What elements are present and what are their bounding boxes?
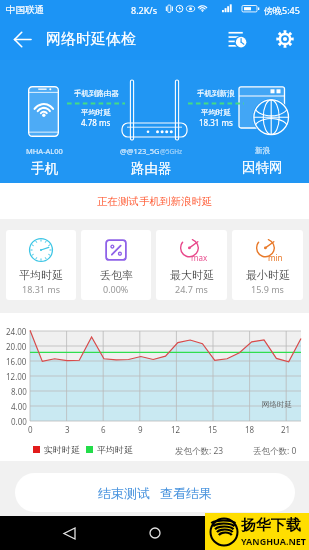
staticText: 手机 [31,160,58,177]
staticText: 16.00 [6,356,27,367]
button[interactable]: 平均时延 [6,230,76,300]
staticText: 最小时延 [246,268,290,282]
staticText: 12 [171,424,181,435]
staticText: @@123_5G [120,146,160,156]
staticText: 中国联通 [6,4,44,16]
staticText: YANGHUA.NET [241,535,307,547]
staticText: 扬华下载 [241,516,301,535]
staticText: 最大时延 [170,268,214,282]
staticText: 丢包率 [100,268,133,282]
staticText: 实时时延 [44,444,80,455]
staticText: 0.00 [11,416,27,427]
button[interactable]: Settings [264,18,306,60]
staticText: 8.2K/s [131,4,157,16]
button[interactable]: Back [52,516,86,550]
staticText: 正在测试手机到新浪时延 [97,195,213,208]
button[interactable]: min [232,230,303,300]
button[interactable]: Back [0,18,44,60]
staticText: 结束测试 [98,485,150,501]
button[interactable]: Home [138,516,172,550]
staticText: 24.7 ms [175,283,208,295]
staticText: 傍晚5:45 [264,4,300,16]
button[interactable]: 结束测试 [94,476,154,510]
staticText: 9 [138,424,143,435]
staticText: 新浪 [255,146,270,155]
staticText: 3 [65,424,70,435]
staticText: 平均时延 [81,108,111,117]
staticText: 4.78 ms [81,117,111,128]
staticText: 4.00 [11,401,27,412]
staticText: 手机到新浪 [197,89,235,98]
staticText: 6 [101,424,106,435]
staticText: 15.9 ms [251,283,284,295]
staticText: 平均时延 [19,268,63,282]
staticText: 因特网 [242,159,283,176]
staticText: 18.31 ms [199,117,233,128]
staticText: 平均时延 [97,444,133,455]
button[interactable]: 查看结果 [156,476,216,510]
staticText: 0 [28,424,33,435]
staticText: @5GHz [160,147,183,156]
staticText: 18 [245,424,255,435]
staticText: 网络时延 [262,400,292,409]
staticText: 24.00 [6,326,27,337]
staticText: 发包个数: 23 [175,445,224,457]
staticText: 15 [208,424,218,435]
staticText: 丢包个数: 0 [253,445,297,457]
staticText: 18.31 ms [22,283,61,295]
staticText: max [191,252,208,263]
staticText: 12.00 [6,371,27,382]
staticText: 路由器 [131,160,172,177]
staticText: min [268,252,283,263]
staticText: 手机到路由器 [74,89,119,98]
staticText: 20.00 [6,341,27,352]
staticText: 查看结果 [160,485,212,501]
button[interactable]: History [216,18,258,60]
staticText: 0.00% [103,283,129,295]
button[interactable]: max [156,230,227,300]
staticText: 网络时延体检 [46,30,136,49]
button[interactable]: Recents [223,516,257,550]
staticText: 平均时延 [201,108,231,117]
staticText: 8.00 [11,386,27,397]
staticText: 21 [281,424,291,435]
staticText: MHA-AL00 [26,146,63,156]
button[interactable]: 丢包率 [81,230,151,300]
